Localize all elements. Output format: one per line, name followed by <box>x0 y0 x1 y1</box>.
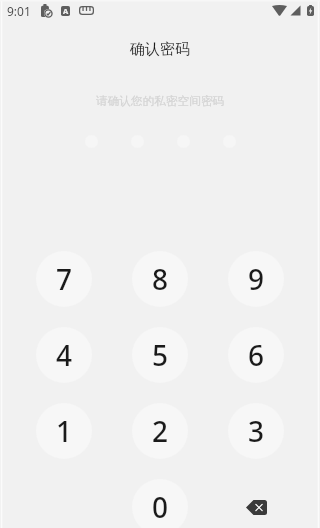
staticText: 9:01 <box>7 3 31 19</box>
staticText: 0 <box>152 488 169 526</box>
button[interactable]: 0 <box>132 479 188 528</box>
button[interactable]: 4 <box>36 327 92 383</box>
staticText: 4 <box>56 336 73 374</box>
button[interactable]: 5 <box>132 327 188 383</box>
staticText: A <box>63 6 69 16</box>
staticText: 6 <box>248 336 265 374</box>
button[interactable]: 3 <box>228 403 284 459</box>
button[interactable]: 1 <box>36 403 92 459</box>
staticText: 确认密码 <box>0 40 320 59</box>
staticText: 请确认您的私密空间密码 <box>0 94 320 109</box>
staticText: 9 <box>248 260 265 298</box>
staticText: 2 <box>152 412 169 450</box>
staticText: 7 <box>56 260 73 298</box>
button[interactable]: 9 <box>228 251 284 307</box>
button[interactable]: 6 <box>228 327 284 383</box>
staticText: 3 <box>248 412 265 450</box>
staticText: 8 <box>152 260 169 298</box>
button[interactable]: 8 <box>132 251 188 307</box>
staticText: 1 <box>56 412 73 450</box>
button[interactable]: Backspace <box>228 479 284 528</box>
staticText: 5 <box>152 336 169 374</box>
button[interactable]: 2 <box>132 403 188 459</box>
button[interactable]: 7 <box>36 251 92 307</box>
